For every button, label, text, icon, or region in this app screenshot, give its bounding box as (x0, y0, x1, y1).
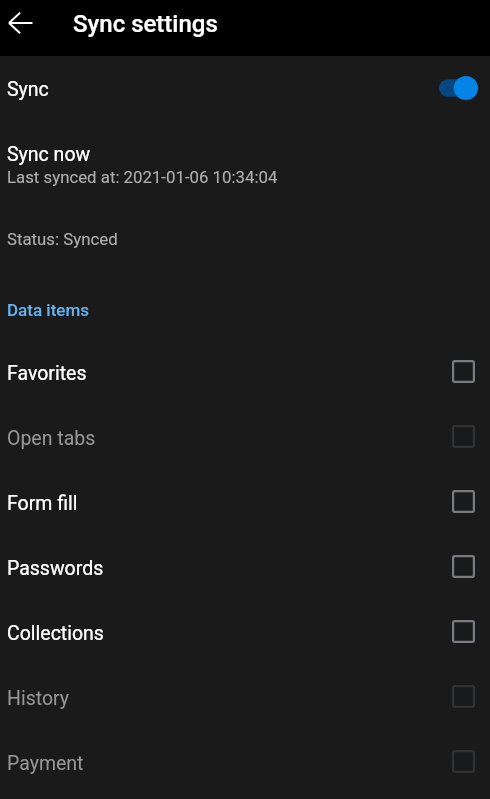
button[interactable]: Form fill (0, 471, 490, 536)
button[interactable]: Open tabs (0, 406, 490, 471)
button[interactable]: Collections (0, 601, 490, 666)
button[interactable]: Sync (0, 57, 490, 121)
staticText: Last synced at: 2021-01-06 10:34:04 (7, 167, 278, 187)
button[interactable]: Favorites (0, 341, 490, 406)
button[interactable]: Sync now (0, 121, 490, 193)
staticText: Collections (7, 622, 104, 645)
staticText: History (7, 687, 70, 710)
staticText: Payment (7, 752, 84, 775)
button[interactable]: History (0, 666, 490, 731)
staticText: Form fill (7, 492, 78, 515)
staticText: Sync now (7, 143, 91, 166)
staticText: Data items (7, 300, 89, 320)
staticText: Sync (7, 78, 49, 101)
staticText: Sync settings (73, 10, 218, 38)
staticText: Open tabs (7, 427, 96, 450)
staticText: Passwords (7, 557, 104, 580)
staticText: Favorites (7, 362, 87, 385)
button[interactable]: Back (0, 0, 44, 46)
button[interactable]: Passwords (0, 536, 490, 601)
staticText: Status: Synced (7, 229, 118, 249)
button[interactable]: Payment (0, 731, 490, 796)
